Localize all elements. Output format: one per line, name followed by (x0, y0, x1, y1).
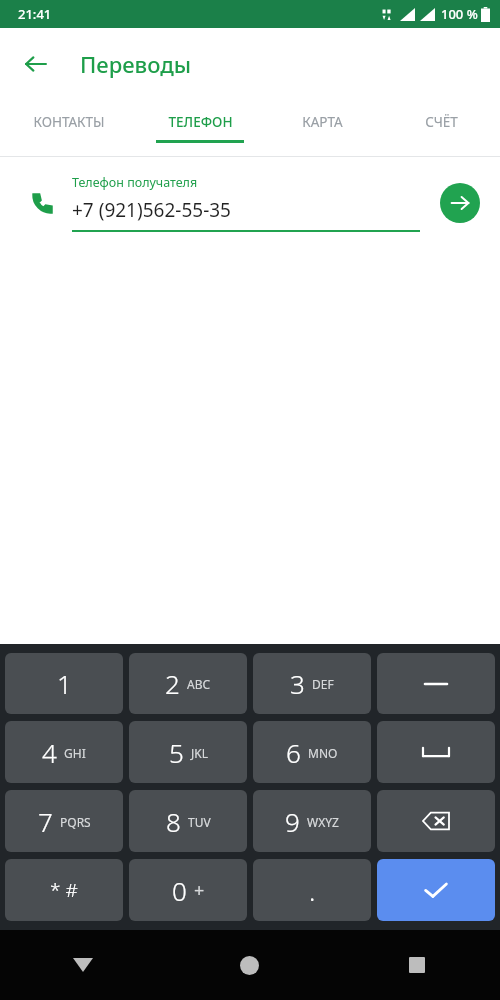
button[interactable]: КОНТАКТЫ (0, 100, 137, 156)
button[interactable]: Назад (14, 42, 58, 86)
button[interactable]: 8 (129, 790, 247, 852)
staticText: 5 (169, 735, 184, 770)
button[interactable]: Назад (0, 930, 166, 1000)
staticText: * # (50, 877, 78, 903)
staticText: +7 (921)562-55-35 (72, 197, 231, 223)
staticText: MNO (308, 745, 338, 761)
staticText: ТЕЛЕФОН (168, 113, 233, 131)
button[interactable]: 0 (129, 859, 247, 921)
button[interactable]: 6 (253, 721, 371, 783)
button[interactable]: 4 (5, 721, 123, 783)
staticText: 21:41 (18, 5, 52, 23)
staticText: 7 (38, 804, 53, 839)
button[interactable]: 7 (5, 790, 123, 852)
staticText: СЧЁТ (425, 113, 458, 131)
button[interactable]: 5 (129, 721, 247, 783)
staticText: 4 (42, 735, 57, 770)
button[interactable]: Пробел (377, 721, 495, 783)
staticText: 0 (172, 873, 187, 908)
staticText: ABC (187, 676, 211, 692)
staticText: GHI (64, 745, 86, 761)
button[interactable]: 1 (5, 653, 123, 714)
button[interactable]: . (253, 859, 371, 921)
staticText: 8 (166, 804, 181, 839)
button[interactable]: Главный экран (166, 930, 333, 1000)
staticText: DEF (312, 676, 334, 692)
other: Телефон (22, 182, 64, 224)
button[interactable]: 2 (129, 653, 247, 714)
staticText: КАРТА (302, 113, 343, 131)
staticText: Телефон получателя (72, 174, 198, 191)
staticText: 100 % (441, 5, 478, 23)
staticText: 1 (57, 666, 72, 701)
button[interactable]: Продолжить (440, 183, 480, 223)
staticText: TUV (188, 814, 211, 830)
staticText: Переводы (80, 49, 192, 79)
button[interactable]: 3 (253, 653, 371, 714)
button[interactable]: КАРТА (262, 100, 381, 156)
staticText: 9 (285, 804, 300, 839)
button[interactable]: Удалить (377, 790, 495, 852)
button[interactable]: * # (5, 859, 123, 921)
button[interactable]: СЧЁТ (381, 100, 500, 156)
staticText: JKL (191, 745, 208, 761)
button[interactable]: 9 (253, 790, 371, 852)
button[interactable]: Дефис (377, 653, 495, 714)
staticText: WXYZ (307, 814, 339, 830)
button[interactable]: Последние приложения (333, 930, 500, 1000)
staticText: . (309, 873, 316, 908)
staticText: 6 (286, 735, 301, 770)
staticText: 2 (165, 666, 180, 701)
staticText: КОНТАКТЫ (33, 113, 105, 131)
button[interactable]: Готово (377, 859, 495, 921)
staticText: + (194, 878, 205, 903)
button[interactable]: ТЕЛЕФОН (137, 100, 262, 156)
staticText: 3 (290, 666, 305, 701)
staticText: PQRS (60, 814, 91, 830)
